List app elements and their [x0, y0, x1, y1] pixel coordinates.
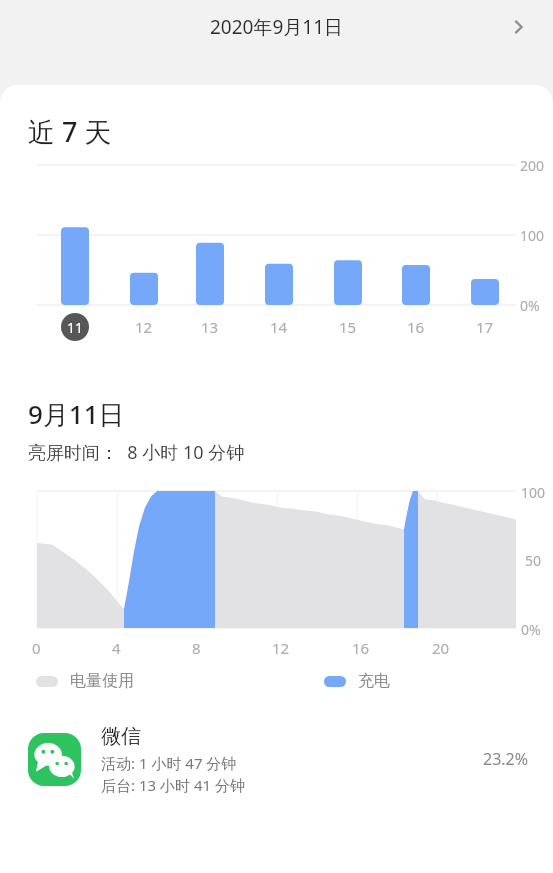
staticText: 微信	[101, 724, 141, 749]
staticText: 0	[32, 638, 41, 658]
staticText: 0%	[521, 620, 541, 639]
button[interactable]: 11	[61, 313, 89, 341]
staticText: 12	[135, 317, 153, 337]
staticText: 14	[270, 317, 288, 337]
staticText: 100	[521, 483, 546, 502]
button[interactable]: 2020年9月11日	[210, 14, 344, 40]
button[interactable]: 微信	[0, 711, 553, 807]
staticText: 100	[520, 226, 545, 245]
staticText: 23.2%	[483, 748, 529, 770]
button[interactable]: 电量使用	[36, 671, 134, 691]
staticText: 近 7 天	[28, 113, 112, 150]
button[interactable]: 17	[471, 313, 499, 341]
staticText: 13	[201, 317, 219, 337]
staticText: 12	[272, 638, 290, 658]
staticText: 50	[525, 551, 542, 570]
staticText: 活动: 1 小时 47 分钟	[101, 753, 237, 773]
staticText: 15	[339, 317, 357, 337]
staticText: 充电	[358, 671, 390, 691]
staticText: 8	[192, 638, 201, 658]
staticText: 亮屏时间： 8 小时 10 分钟	[28, 440, 245, 465]
button[interactable]: 16	[402, 313, 430, 341]
staticText: 16	[352, 638, 370, 658]
staticText: 17	[476, 317, 494, 337]
staticText: 0%	[520, 296, 540, 315]
staticText: 11	[67, 318, 84, 337]
button[interactable]: Next day	[499, 8, 537, 46]
button[interactable]: 13	[196, 313, 224, 341]
button[interactable]: 充电	[324, 671, 390, 691]
staticText: 200	[520, 156, 545, 175]
staticText: 20	[432, 638, 450, 658]
button[interactable]: 15	[334, 313, 362, 341]
button[interactable]: 14	[265, 313, 293, 341]
staticText: 4	[112, 638, 121, 658]
staticText: 电量使用	[70, 671, 134, 691]
staticText: 16	[407, 317, 425, 337]
staticText: 9月11日	[28, 396, 125, 432]
staticText: 后台: 13 小时 41 分钟	[101, 775, 245, 795]
button[interactable]: 12	[130, 313, 158, 341]
